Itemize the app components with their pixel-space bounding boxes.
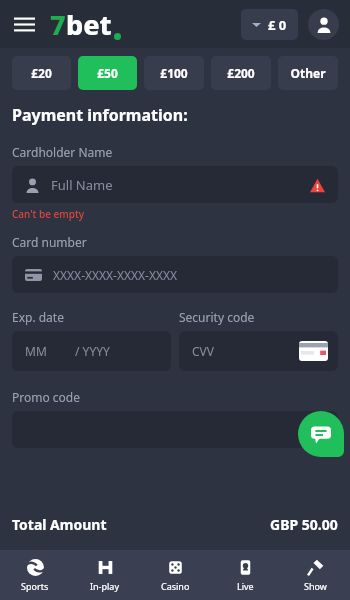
staticText: bet: [66, 6, 112, 43]
button[interactable]: £50: [78, 56, 137, 90]
button[interactable]: Sports: [0, 550, 70, 600]
button[interactable]: Menu: [11, 11, 37, 37]
button[interactable]: Show: [280, 550, 350, 600]
staticText: / YYYY: [75, 343, 110, 359]
staticText: Full Name: [51, 176, 113, 194]
staticText: Live: [237, 580, 254, 592]
staticText: Total Amount: [12, 515, 107, 534]
button[interactable]: Chat support: [298, 411, 344, 457]
button[interactable]: £20: [12, 56, 71, 90]
staticText: Card number: [12, 234, 87, 250]
staticText: £100: [160, 65, 188, 81]
button[interactable]: In-play: [70, 550, 140, 600]
staticText: 7: [50, 6, 66, 43]
staticText: XXXX-XXXX-XXXX-XXXX: [53, 267, 178, 283]
button[interactable]: Full Name: [12, 166, 338, 203]
staticText: Can't be empty: [12, 207, 85, 221]
button[interactable]: CVV: [179, 331, 338, 371]
button[interactable]: XXXX-XXXX-XXXX-XXXX: [12, 256, 338, 293]
staticText: Security code: [179, 309, 255, 325]
staticText: Cardholder Name: [12, 144, 113, 160]
staticText: Promo code: [12, 389, 81, 405]
staticText: Sports: [21, 580, 49, 592]
button[interactable]: £ 0: [241, 9, 298, 40]
button[interactable]: Other: [278, 56, 338, 90]
button[interactable]: Account: [308, 9, 339, 40]
staticText: Exp. date: [12, 309, 64, 325]
button[interactable]: £100: [144, 56, 204, 90]
staticText: Other: [290, 65, 326, 81]
staticText: GBP 50.00: [270, 515, 338, 534]
staticText: £20: [31, 65, 52, 81]
staticText: In-play: [90, 580, 120, 592]
staticText: Casino: [161, 580, 190, 592]
button[interactable]: MM: [12, 331, 171, 371]
button[interactable]: Casino: [140, 550, 210, 600]
staticText: MM: [25, 343, 47, 359]
button[interactable]: £200: [211, 56, 271, 90]
staticText: Show: [304, 580, 327, 592]
staticText: £200: [227, 65, 255, 81]
button[interactable]: Live: [210, 550, 280, 600]
staticText: £50: [97, 65, 118, 81]
button[interactable]: [12, 411, 338, 448]
staticText: CVV: [192, 343, 214, 359]
staticText: Payment information:: [12, 104, 188, 126]
staticText: £ 0: [268, 16, 287, 34]
